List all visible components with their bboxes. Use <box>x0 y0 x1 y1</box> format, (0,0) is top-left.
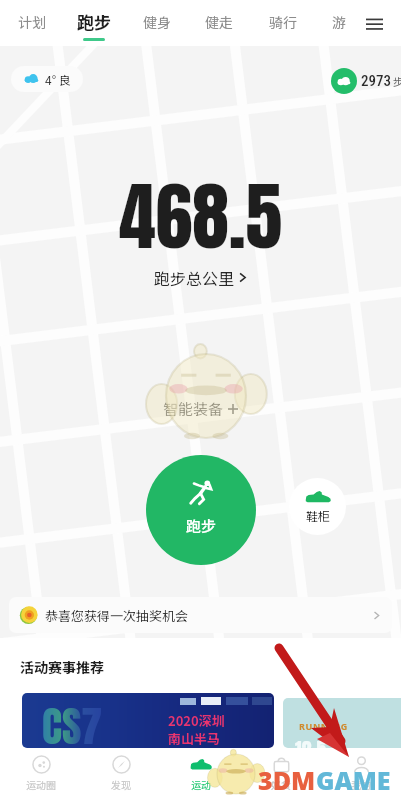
staticText: 南山半马 <box>168 729 221 748</box>
staticText: 健走 <box>205 12 233 32</box>
button[interactable]: 4° 良 <box>23 66 71 92</box>
button[interactable]: 计划 <box>8 0 56 46</box>
staticText: 跑步 <box>77 9 111 34</box>
button[interactable]: CS7 <box>22 693 274 748</box>
staticText: 12·5 <box>295 734 327 748</box>
staticText: CS7 <box>42 695 103 748</box>
staticText: 步 <box>393 73 401 89</box>
staticText: 智能装备 <box>163 398 224 420</box>
button[interactable]: 运动圈 <box>0 748 81 796</box>
button[interactable]: 发现 <box>81 748 161 796</box>
staticText: 468.5 <box>119 161 283 272</box>
button[interactable]: 好货 <box>241 748 321 796</box>
button[interactable]: 我的 <box>321 748 401 796</box>
button[interactable]: 鞋柜 <box>289 478 346 535</box>
button[interactable]: 健走 <box>195 0 243 46</box>
button[interactable]: 运动 <box>161 748 241 796</box>
button[interactable]: RUNNING <box>283 698 401 748</box>
button[interactable]: 游 <box>322 0 356 46</box>
staticText: 运动 <box>191 777 211 791</box>
staticText: RUNNING <box>299 720 348 732</box>
button[interactable]: 恭喜您获得一次抽奖机会 <box>20 597 381 633</box>
button[interactable]: 智能装备 <box>163 398 238 420</box>
staticText: GAME <box>316 763 391 796</box>
staticText: 4° 良 <box>45 71 71 88</box>
button[interactable]: 跑步 <box>146 455 256 565</box>
staticText: 2973 <box>361 72 391 90</box>
staticText: 2020深圳 <box>168 711 225 730</box>
staticText: 计划 <box>18 12 46 32</box>
staticText: 我的 <box>351 777 371 791</box>
staticText: 运动圈 <box>26 777 56 791</box>
button[interactable]: 跑步总公里 <box>154 266 248 289</box>
staticText: 好货 <box>271 777 291 791</box>
staticText: 发现 <box>111 777 131 791</box>
button[interactable]: 跑步 <box>67 0 121 46</box>
staticText: 鞋柜 <box>306 507 331 524</box>
staticText: 健身 <box>143 12 171 32</box>
staticText: 跑步 <box>186 515 217 537</box>
staticText: 骑行 <box>269 12 297 32</box>
staticText: 恭喜您获得一次抽奖机会 <box>45 606 189 625</box>
staticText: 活动赛事推荐 <box>20 657 104 677</box>
button[interactable]: 骑行 <box>259 0 307 46</box>
button[interactable]: 2973 <box>331 68 401 94</box>
staticText: 游 <box>332 12 346 32</box>
staticText: 跑步总公里 <box>154 266 235 289</box>
staticText: 3DM <box>258 763 316 796</box>
button[interactable]: Menu <box>357 0 391 46</box>
button[interactable]: 健身 <box>133 0 181 46</box>
